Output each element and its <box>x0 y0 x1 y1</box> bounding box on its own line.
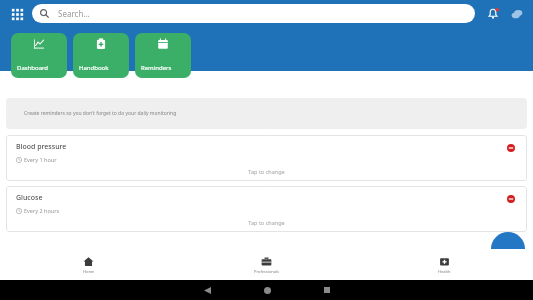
button[interactable]: Professionals <box>177 249 355 280</box>
staticText: Health <box>438 269 451 274</box>
staticText: Professionals <box>254 269 279 274</box>
button[interactable]: Disable reminder <box>504 192 518 206</box>
button[interactable]: Search... <box>32 4 475 23</box>
staticText: Tap to change <box>248 168 285 175</box>
staticText: Handbook <box>79 64 109 72</box>
button[interactable]: Disable reminder <box>504 141 518 155</box>
staticText: Create reminders so you don't forget to … <box>24 110 177 117</box>
button[interactable]: Health <box>355 249 533 280</box>
staticText: Home <box>83 269 95 274</box>
staticText: Blood pressure <box>16 142 67 152</box>
button[interactable]: Reminders <box>135 33 191 78</box>
staticText: Dashboard <box>17 64 49 72</box>
button[interactable]: Glucose <box>6 186 527 232</box>
staticText: Search... <box>58 8 90 19</box>
button[interactable]: Apps <box>5 2 29 26</box>
staticText: Tap to change <box>248 219 285 226</box>
staticText: Reminders <box>141 64 172 72</box>
staticText: Glucose <box>16 193 43 203</box>
button[interactable]: Dashboard <box>11 33 67 78</box>
staticText: Every 2 hours <box>24 207 60 214</box>
button[interactable]: Home <box>0 249 177 280</box>
button[interactable]: Notifications <box>482 3 504 25</box>
button[interactable]: Handbook <box>73 33 129 78</box>
button[interactable]: Messages <box>506 3 528 25</box>
button[interactable]: Blood pressure <box>6 135 527 181</box>
staticText: Every 1 hour <box>24 156 57 163</box>
button[interactable]: Add reminder <box>491 232 525 266</box>
